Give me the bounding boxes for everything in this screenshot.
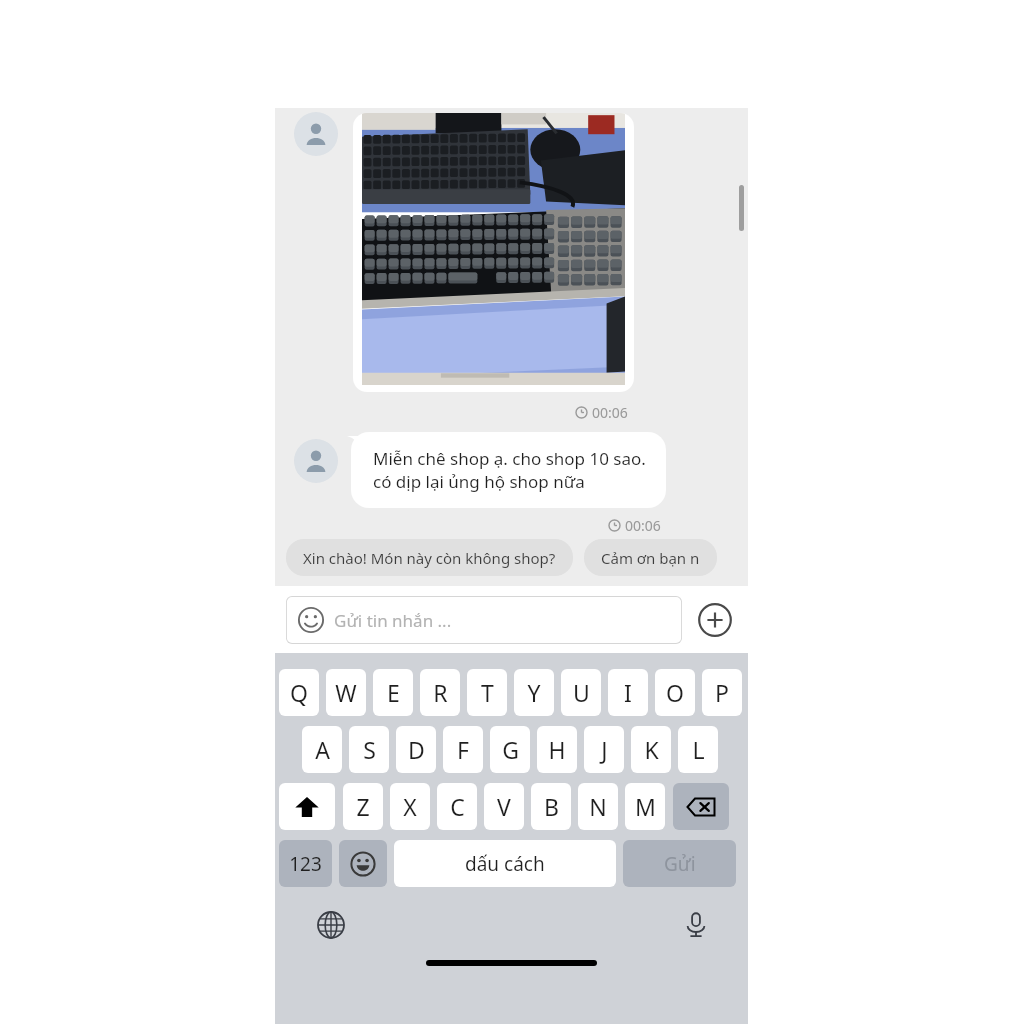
staticText: F <box>457 734 469 765</box>
button[interactable]: B <box>531 783 571 830</box>
button[interactable]: I <box>608 669 648 716</box>
button[interactable]: J <box>584 726 624 773</box>
staticText: S <box>363 734 376 765</box>
button[interactable]: R <box>420 669 460 716</box>
staticText: P <box>715 677 729 708</box>
staticText: M <box>635 791 656 822</box>
button[interactable]: Xin chào! Món này còn không shop? <box>286 539 573 576</box>
button[interactable]: Cảm ơn bạn n <box>584 539 717 576</box>
button[interactable]: Add attachment <box>693 598 737 642</box>
button[interactable]: 123 <box>279 840 332 887</box>
button[interactable]: K <box>631 726 671 773</box>
button[interactable]: T <box>467 669 507 716</box>
staticText: X <box>403 791 417 822</box>
staticText: H <box>548 734 566 765</box>
button[interactable]: Y <box>514 669 554 716</box>
staticText: W <box>335 677 357 708</box>
staticText: 00:06 <box>592 403 628 422</box>
staticText: O <box>666 677 684 708</box>
staticText: Xin chào! Món này còn không shop? <box>303 548 556 568</box>
button[interactable]: P <box>702 669 742 716</box>
staticText: Y <box>527 677 541 708</box>
button[interactable]: Change keyboard language <box>309 903 353 947</box>
staticText: 00:06 <box>625 516 661 535</box>
staticText: G <box>502 734 519 765</box>
staticText: N <box>589 791 607 822</box>
button[interactable]: W <box>326 669 366 716</box>
staticText: Miễn chê shop ạ. cho shop 10 sao. <box>373 447 646 470</box>
staticText: Cảm ơn bạn n <box>601 548 700 568</box>
button[interactable]: dấu cách <box>394 840 616 887</box>
button[interactable]: Miễn chê shop ạ. cho shop 10 sao. <box>351 432 666 508</box>
staticText: có dịp lại ủng hộ shop nữa <box>373 470 585 493</box>
staticText: K <box>644 734 659 765</box>
button[interactable]: E <box>373 669 413 716</box>
button[interactable]: A <box>302 726 342 773</box>
staticText: B <box>544 791 559 822</box>
staticText: J <box>601 734 608 765</box>
staticText: Gửi <box>664 851 696 877</box>
button[interactable]: Gửi tin nhắn ... <box>286 596 682 644</box>
staticText: Q <box>290 677 308 708</box>
button[interactable]: D <box>396 726 436 773</box>
staticText: C <box>450 791 465 822</box>
button[interactable]: C <box>437 783 477 830</box>
button[interactable]: Avatar <box>294 112 338 156</box>
button[interactable]: Z <box>343 783 383 830</box>
staticText: Z <box>356 791 370 822</box>
button[interactable]: Q <box>279 669 319 716</box>
button[interactable]: N <box>578 783 618 830</box>
button[interactable]: L <box>678 726 718 773</box>
button[interactable]: Gửi <box>623 840 736 887</box>
staticText: T <box>481 677 494 708</box>
button[interactable]: S <box>349 726 389 773</box>
staticText: V <box>497 791 511 822</box>
button[interactable]: V <box>484 783 524 830</box>
button[interactable]: X <box>390 783 430 830</box>
button[interactable]: Voice input <box>674 903 718 947</box>
staticText: A <box>315 734 330 765</box>
staticText: 123 <box>289 851 322 877</box>
button[interactable]: Emoji <box>339 840 387 887</box>
button[interactable]: U <box>561 669 601 716</box>
button[interactable]: G <box>490 726 530 773</box>
button[interactable]: Photo message <box>353 113 634 392</box>
button[interactable]: Backspace <box>673 783 729 830</box>
staticText: E <box>387 677 400 708</box>
staticText: D <box>408 734 425 765</box>
button[interactable]: M <box>625 783 665 830</box>
staticText: R <box>433 677 448 708</box>
staticText: Gửi tin nhắn ... <box>334 609 452 632</box>
staticText: I <box>624 677 632 708</box>
button[interactable]: Shift <box>279 783 335 830</box>
button[interactable]: Avatar <box>294 439 338 483</box>
button[interactable]: H <box>537 726 577 773</box>
staticText: U <box>573 677 590 708</box>
staticText: dấu cách <box>465 851 545 877</box>
button[interactable]: O <box>655 669 695 716</box>
staticText: L <box>692 734 705 765</box>
button[interactable]: F <box>443 726 483 773</box>
